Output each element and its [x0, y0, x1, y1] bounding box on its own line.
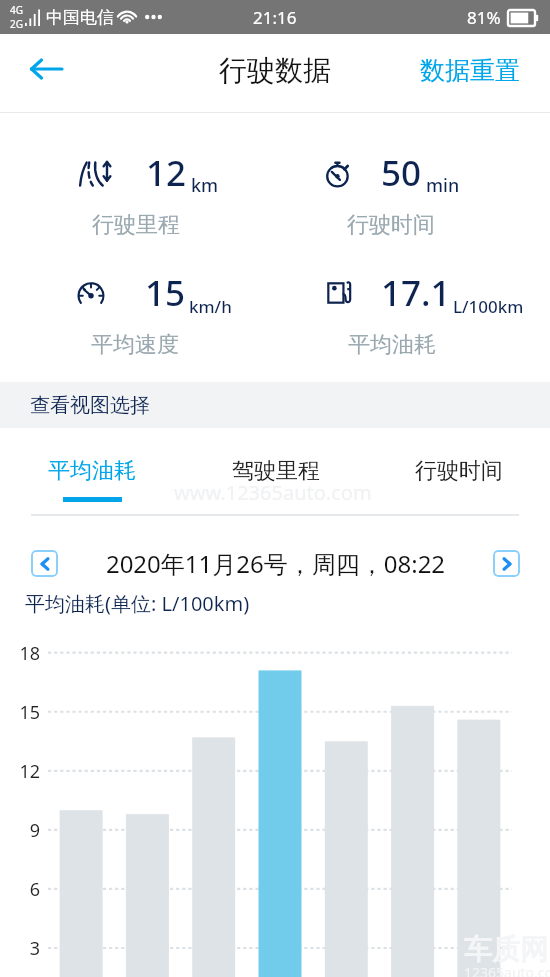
staticText: 6: [18, 877, 40, 902]
staticText: 3: [18, 936, 40, 961]
staticText: 12: [146, 149, 187, 197]
staticText: km: [191, 173, 219, 198]
staticText: 驾驶里程: [232, 457, 320, 485]
staticText: 17.1: [381, 269, 451, 317]
staticText: 平均油耗: [348, 331, 436, 359]
staticText: 平均油耗: [48, 457, 136, 485]
staticText: 12: [18, 759, 40, 784]
staticText: 9: [18, 818, 40, 843]
staticText: www.12365auto.com: [174, 479, 372, 506]
button[interactable]: 行驶时间: [367, 428, 550, 502]
staticText: 中国电信: [46, 7, 114, 28]
staticText: 车质网: [464, 932, 548, 967]
button[interactable]: Previous date: [31, 550, 58, 577]
staticText: 18: [18, 641, 40, 666]
staticText: km/h: [189, 295, 232, 318]
staticText: 2020年11月26号，周四，08:22: [58, 547, 493, 580]
button[interactable]: 数据重置: [400, 40, 550, 107]
staticText: 2G: [10, 17, 23, 31]
staticText: 15: [145, 269, 186, 317]
staticText: L/100km: [453, 295, 524, 318]
staticText: 21:16: [253, 6, 297, 29]
button[interactable]: Next date: [493, 550, 520, 577]
staticText: 15: [18, 700, 40, 725]
staticText: 81%: [467, 6, 501, 29]
staticText: 行驶数据: [219, 53, 331, 88]
staticText: 数据重置: [420, 55, 520, 86]
button[interactable]: 驾驶里程: [184, 428, 367, 502]
staticText: 平均速度: [91, 331, 179, 359]
staticText: 平均油耗(单位: L/100km): [25, 590, 250, 617]
button[interactable]: Back: [0, 34, 92, 112]
staticText: 行驶时间: [415, 457, 503, 485]
staticText: 查看视图选择: [30, 393, 150, 418]
staticText: 行驶时间: [347, 211, 435, 239]
staticText: min: [426, 173, 460, 198]
button[interactable]: 平均油耗: [0, 428, 184, 502]
staticText: 50: [381, 149, 422, 197]
staticText: 4G: [10, 3, 23, 17]
staticText: 行驶里程: [92, 211, 180, 239]
staticText: 12365auto.com: [464, 963, 550, 977]
